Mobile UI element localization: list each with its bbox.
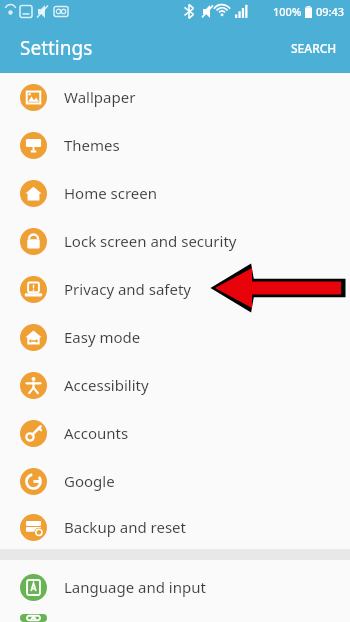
staticText: Language and input xyxy=(64,577,206,597)
button[interactable]: Home screen xyxy=(0,169,350,217)
staticText: Easy mode xyxy=(64,327,141,347)
staticText: SEARCH xyxy=(291,40,337,56)
button[interactable]: Lock screen and security xyxy=(0,217,350,265)
staticText: Backup and reset xyxy=(64,517,186,537)
staticText: Themes xyxy=(64,135,120,155)
button[interactable] xyxy=(0,614,350,622)
staticText: Home screen xyxy=(64,183,158,203)
staticText: Privacy and safety xyxy=(64,279,192,299)
button[interactable]: Google xyxy=(0,457,350,505)
button[interactable]: Accessibility xyxy=(0,361,350,409)
staticText: Settings xyxy=(20,35,93,61)
button[interactable]: Themes xyxy=(0,121,350,169)
staticText: Accessibility xyxy=(64,375,149,395)
staticText: Accounts xyxy=(64,423,129,443)
button[interactable]: Backup and reset xyxy=(0,505,350,549)
staticText: Wallpaper xyxy=(64,87,136,107)
staticText: Lock screen and security xyxy=(64,231,237,251)
staticText: Google xyxy=(64,471,115,491)
button[interactable]: Wallpaper xyxy=(0,73,350,121)
staticText: 09:43 xyxy=(316,4,345,19)
button[interactable]: SEARCH xyxy=(278,30,350,66)
button[interactable]: Accounts xyxy=(0,409,350,457)
staticText: 100% xyxy=(273,4,302,19)
button[interactable]: Language and input xyxy=(0,560,350,614)
button[interactable]: Privacy and safety xyxy=(0,265,350,313)
button[interactable]: Easy mode xyxy=(0,313,350,361)
